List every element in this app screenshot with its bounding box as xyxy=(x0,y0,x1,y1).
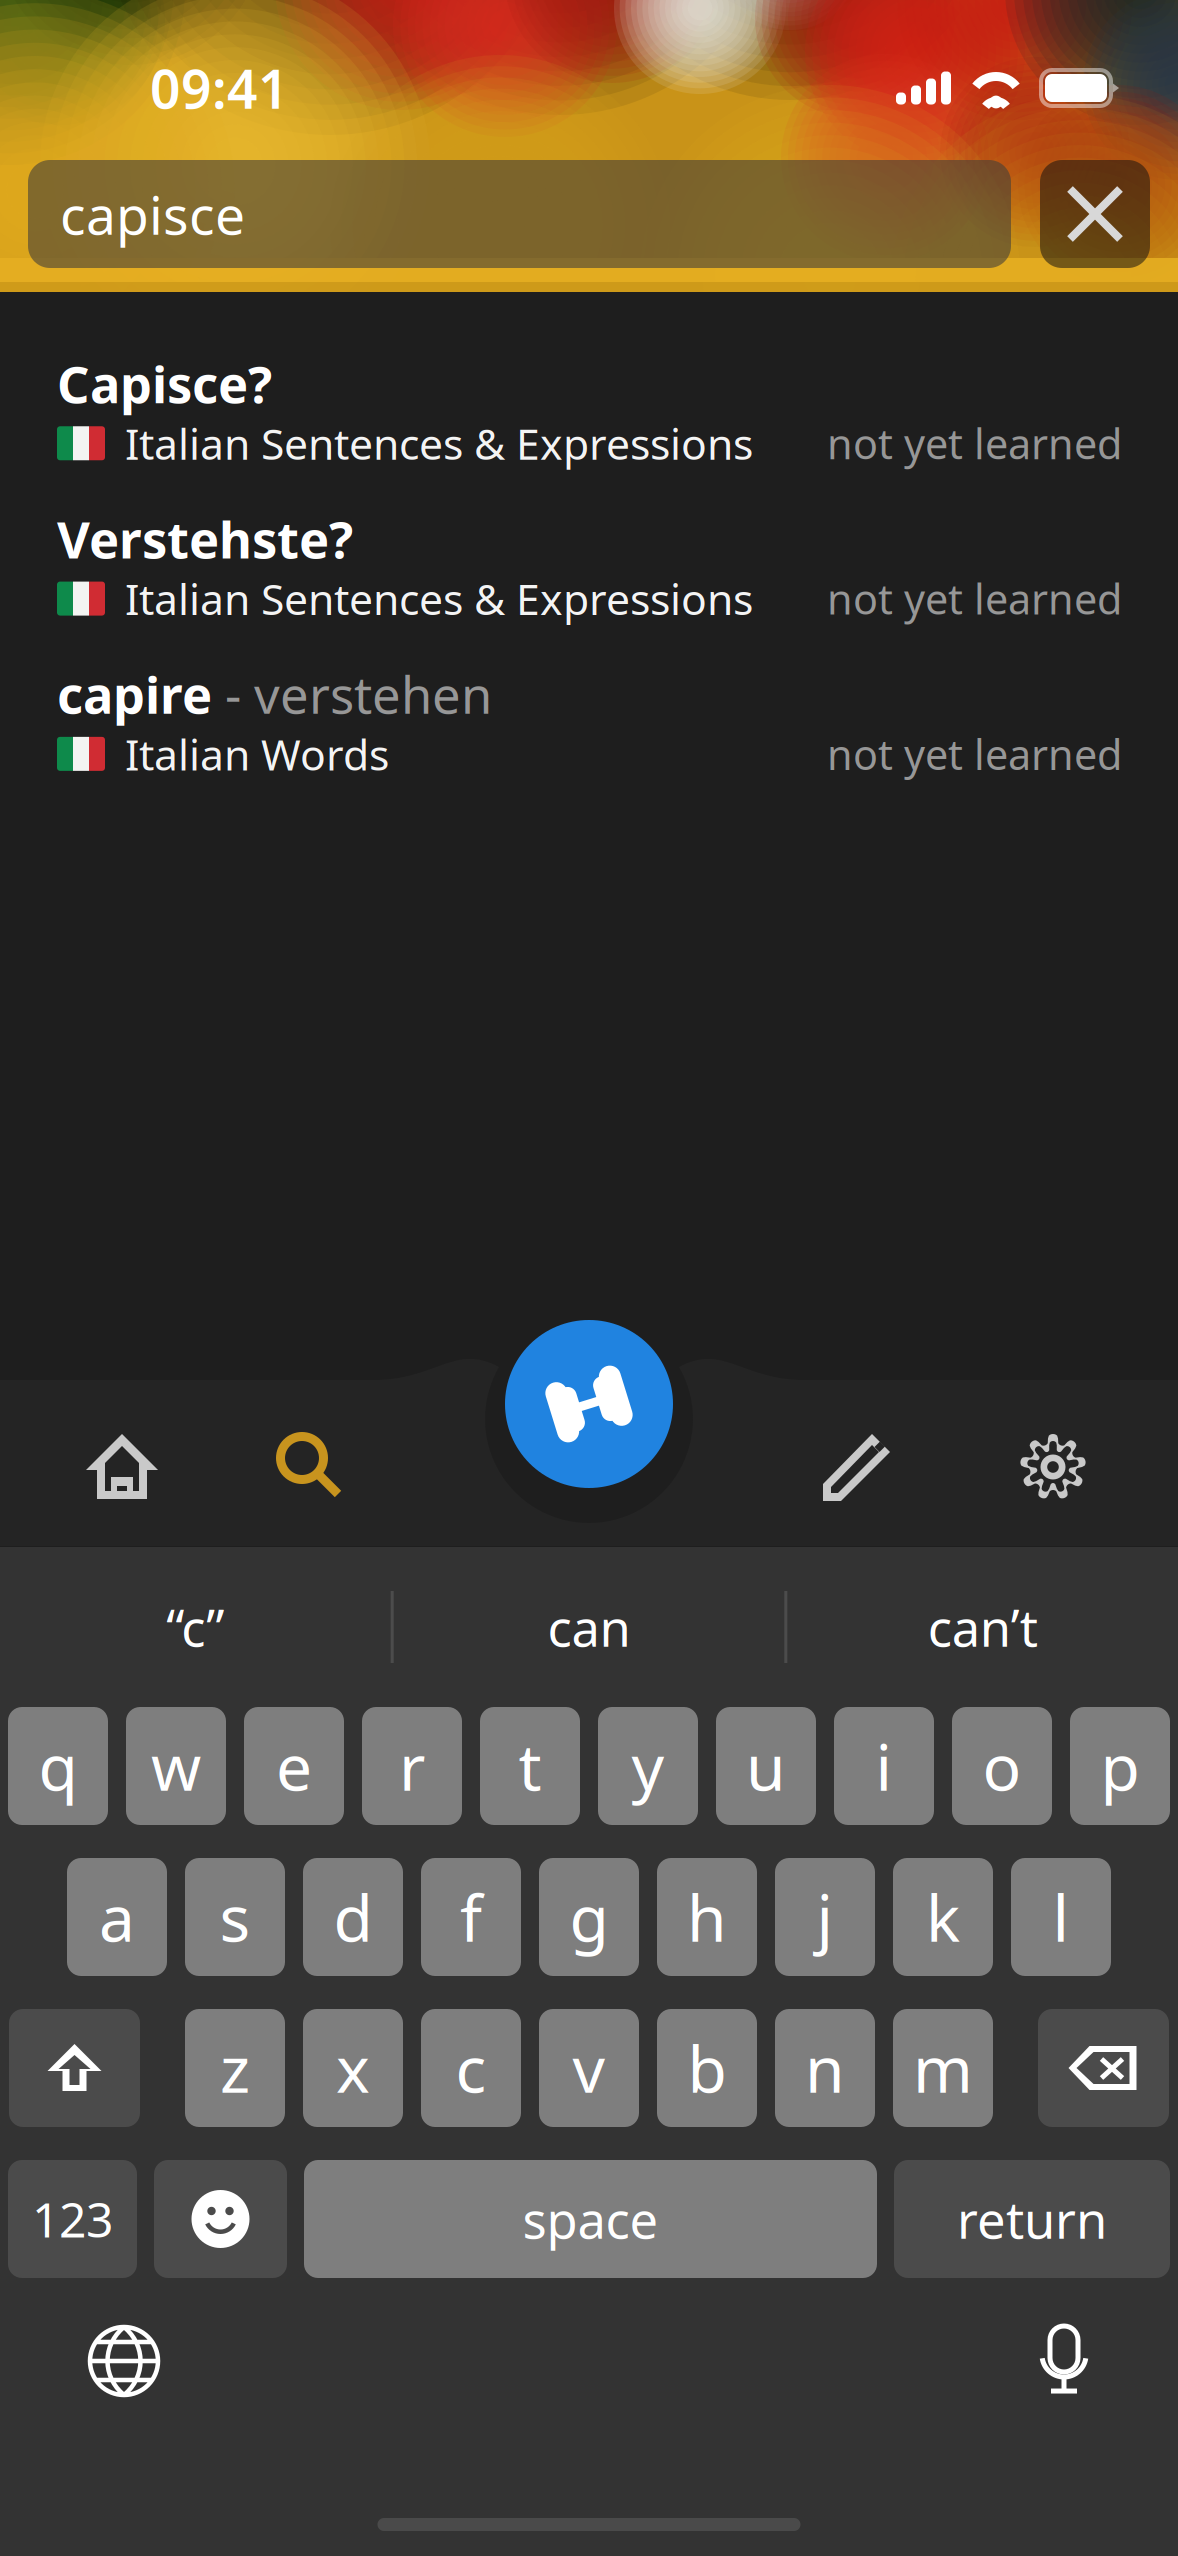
staticText: Verstehste? xyxy=(57,505,353,573)
button[interactable]: k xyxy=(893,1858,993,1976)
staticText: u xyxy=(746,1723,786,1808)
staticText: not yet learned xyxy=(827,571,1122,626)
staticText: space xyxy=(522,2185,658,2253)
button[interactable]: z xyxy=(185,2009,285,2127)
staticText: Capisce? xyxy=(57,350,272,417)
button[interactable]: p xyxy=(1070,1707,1170,1825)
staticText: k xyxy=(926,1874,960,1959)
staticText: q xyxy=(38,1723,77,1808)
staticText: - verstehen xyxy=(212,661,492,728)
staticText: s xyxy=(219,1874,250,1959)
button[interactable]: l xyxy=(1011,1858,1111,1976)
button[interactable]: can xyxy=(394,1546,784,1708)
staticText: capire xyxy=(57,661,212,728)
button[interactable]: u xyxy=(716,1707,816,1825)
staticText: y xyxy=(631,1723,664,1808)
button[interactable]: Delete xyxy=(1038,2009,1169,2127)
button[interactable]: t xyxy=(480,1707,580,1825)
button[interactable]: i xyxy=(834,1707,934,1825)
button[interactable]: a xyxy=(67,1858,167,1976)
staticText: return xyxy=(957,2185,1107,2253)
button[interactable]: Home xyxy=(0,1412,244,1522)
button[interactable]: 123 xyxy=(8,2160,137,2278)
button[interactable]: e xyxy=(244,1707,344,1825)
staticText: x xyxy=(336,2025,370,2110)
staticText: m xyxy=(913,2025,973,2110)
button[interactable]: Dictation xyxy=(1036,2323,1092,2399)
staticText: 09:41 xyxy=(150,53,289,123)
button[interactable]: “c” xyxy=(0,1546,391,1708)
staticText: Italian Words xyxy=(125,725,389,782)
staticText: 123 xyxy=(32,2187,113,2251)
button[interactable]: n xyxy=(775,2009,875,2127)
staticText: h xyxy=(687,1874,727,1959)
staticText: i xyxy=(875,1723,892,1808)
staticText: can xyxy=(547,1593,630,1661)
button[interactable]: q xyxy=(8,1707,108,1825)
staticText: d xyxy=(333,1874,372,1959)
button[interactable]: j xyxy=(775,1858,875,1976)
button[interactable]: Shift xyxy=(9,2009,140,2127)
staticText: t xyxy=(518,1723,541,1808)
button[interactable]: f xyxy=(421,1858,521,1976)
button[interactable]: can’t xyxy=(787,1546,1178,1708)
button[interactable]: o xyxy=(952,1707,1052,1825)
staticText: z xyxy=(220,2025,250,2110)
button[interactable]: Capisce? xyxy=(0,336,1178,491)
staticText: l xyxy=(1052,1874,1069,1959)
staticText: c xyxy=(455,2025,486,2110)
button[interactable]: Clear search xyxy=(1040,160,1150,268)
button[interactable]: space xyxy=(304,2160,877,2278)
button[interactable]: Search xyxy=(244,1412,378,1522)
staticText: e xyxy=(276,1723,312,1808)
staticText: Italian Sentences & Expressions xyxy=(125,415,753,472)
button[interactable]: capire xyxy=(0,647,1178,802)
staticText: n xyxy=(805,2025,845,2110)
staticText: not yet learned xyxy=(827,416,1122,471)
button[interactable]: Write xyxy=(786,1412,928,1522)
staticText: not yet learned xyxy=(827,726,1122,781)
staticText: o xyxy=(982,1723,1021,1808)
staticText: j xyxy=(816,1874,833,1959)
button[interactable]: c xyxy=(421,2009,521,2127)
button[interactable]: m xyxy=(893,2009,993,2127)
button[interactable]: r xyxy=(362,1707,462,1825)
staticText: capisce xyxy=(60,179,245,249)
button[interactable]: capisce xyxy=(28,160,1011,268)
staticText: w xyxy=(151,1723,201,1808)
button[interactable]: Emoji xyxy=(154,2160,287,2278)
staticText: f xyxy=(460,1874,482,1959)
button[interactable]: Settings xyxy=(928,1412,1178,1522)
button[interactable]: g xyxy=(539,1858,639,1976)
staticText: Italian Sentences & Expressions xyxy=(125,570,753,627)
staticText: r xyxy=(399,1723,425,1808)
button[interactable]: x xyxy=(303,2009,403,2127)
button[interactable]: Verstehste? xyxy=(0,491,1178,647)
button[interactable]: h xyxy=(657,1858,757,1976)
button[interactable]: b xyxy=(657,2009,757,2127)
staticText: a xyxy=(99,1874,135,1959)
staticText: b xyxy=(687,2025,726,2110)
staticText: “c” xyxy=(166,1593,224,1661)
button[interactable]: v xyxy=(539,2009,639,2127)
staticText: g xyxy=(569,1874,608,1959)
staticText: can’t xyxy=(928,1593,1038,1661)
staticText: v xyxy=(572,2025,605,2110)
button[interactable]: Practice xyxy=(505,1320,673,1488)
button[interactable]: y xyxy=(598,1707,698,1825)
button[interactable]: s xyxy=(185,1858,285,1976)
staticText: p xyxy=(1100,1723,1139,1808)
button[interactable]: d xyxy=(303,1858,403,1976)
button[interactable]: w xyxy=(126,1707,226,1825)
button[interactable]: Next keyboard xyxy=(88,2325,160,2397)
button[interactable]: return xyxy=(894,2160,1170,2278)
